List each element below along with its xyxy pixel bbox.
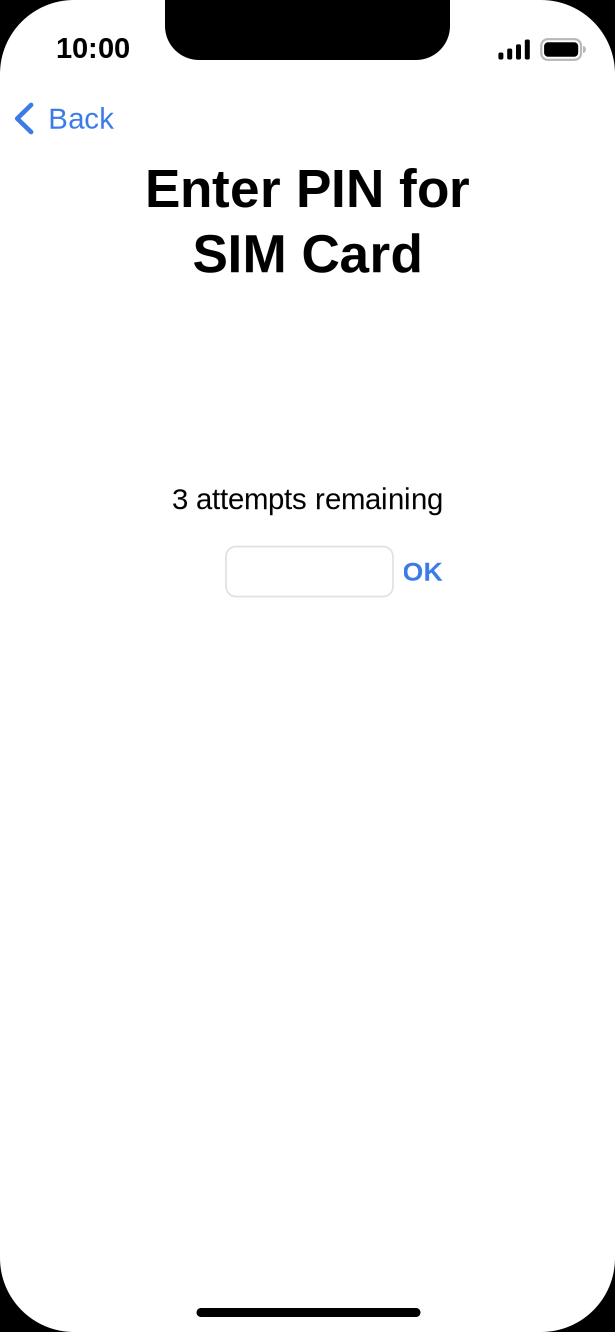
- staticText: Back: [48, 102, 114, 135]
- staticText: SIM Card: [192, 224, 422, 284]
- staticText: 3 attempts remaining: [172, 483, 443, 516]
- staticText: OK: [402, 557, 442, 586]
- button[interactable]: Back: [0, 97, 130, 140]
- staticText: Enter PIN for: [145, 159, 470, 218]
- button[interactable]: OK: [390, 545, 454, 598]
- button[interactable]: [226, 546, 393, 596]
- staticText: 10:00: [56, 32, 130, 64]
